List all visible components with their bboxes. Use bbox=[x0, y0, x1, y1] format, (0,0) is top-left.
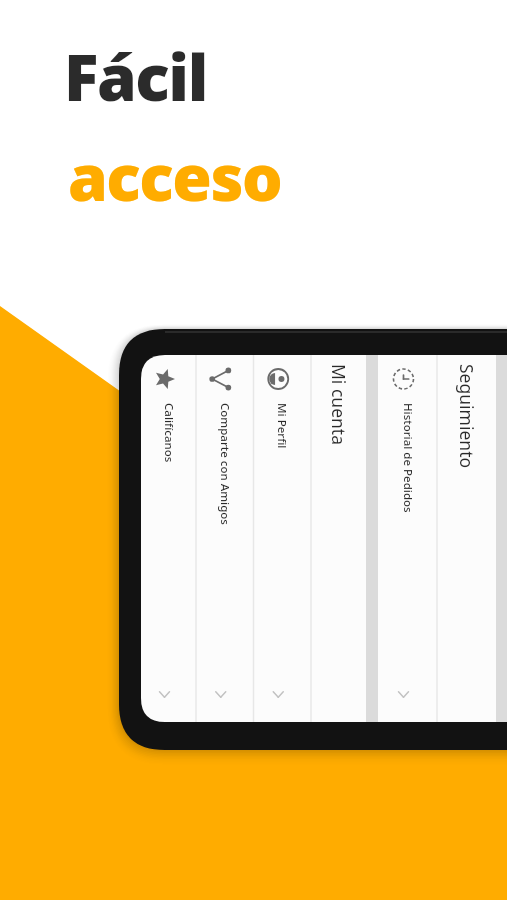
button[interactable]: Califícanos bbox=[141, 355, 196, 722]
button[interactable]: Historial de Pedidos bbox=[378, 355, 437, 722]
button[interactable]: Comparte con Amigos bbox=[196, 355, 254, 722]
button[interactable]: Mi Perfil bbox=[254, 355, 312, 722]
